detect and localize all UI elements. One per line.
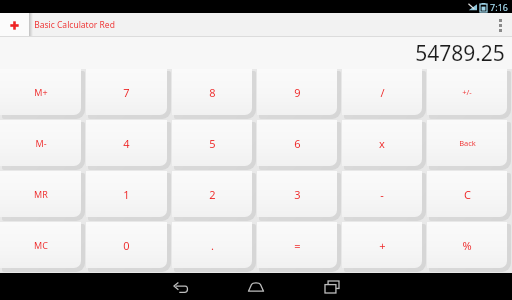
staticText: C [464, 187, 471, 202]
staticText: +/- [462, 87, 472, 97]
button[interactable]: 6 [257, 120, 341, 170]
staticText: % [462, 238, 472, 253]
staticText: 9 [294, 85, 301, 100]
staticText: 4 [123, 136, 130, 151]
button[interactable]: M- [0, 120, 85, 170]
button[interactable]: C [427, 171, 511, 221]
staticText: 0 [123, 238, 130, 253]
button[interactable]: / [342, 69, 426, 119]
staticText: M- [35, 137, 47, 149]
button[interactable]: 8 [172, 69, 256, 119]
button[interactable]: New [0, 13, 29, 37]
button[interactable]: 3 [257, 171, 341, 221]
staticText: x [379, 136, 385, 151]
button[interactable]: Recent apps [306, 273, 358, 300]
staticText: MR [34, 188, 48, 200]
button[interactable]: 1 [86, 171, 171, 221]
button[interactable]: Back [427, 120, 511, 170]
button[interactable]: M+ [0, 69, 85, 119]
staticText: / [380, 85, 385, 100]
staticText: 1 [123, 187, 130, 202]
staticText: = [294, 238, 301, 253]
button[interactable]: . [172, 222, 256, 272]
staticText: 3 [294, 187, 301, 202]
button[interactable]: Home [230, 273, 282, 300]
button[interactable]: Back [154, 273, 206, 300]
button[interactable]: % [427, 222, 511, 272]
staticText: 2 [209, 187, 216, 202]
button[interactable]: x [342, 120, 426, 170]
button[interactable]: 5 [172, 120, 256, 170]
staticText: - [380, 187, 384, 202]
staticText: 7 [123, 85, 130, 100]
staticText: 54789.25 [415, 39, 505, 68]
button[interactable]: 7 [86, 69, 171, 119]
staticText: . [211, 238, 214, 253]
button[interactable]: MC [0, 222, 85, 272]
button[interactable]: 9 [257, 69, 341, 119]
staticText: Back [459, 138, 476, 148]
button[interactable]: +/- [427, 69, 511, 119]
button[interactable]: 4 [86, 120, 171, 170]
staticText: 6 [294, 136, 301, 151]
button[interactable]: More options [488, 13, 512, 37]
staticText: 5 [209, 136, 216, 151]
button[interactable]: 0 [86, 222, 171, 272]
button[interactable]: - [342, 171, 426, 221]
staticText: + [379, 238, 386, 253]
staticText: 7:16 [490, 1, 508, 13]
button[interactable]: 2 [172, 171, 256, 221]
button[interactable]: = [257, 222, 341, 272]
staticText: MC [34, 239, 48, 251]
staticText: 8 [209, 85, 216, 100]
staticText: M+ [34, 86, 48, 98]
button[interactable]: + [342, 222, 426, 272]
button[interactable]: MR [0, 171, 85, 221]
staticText: Basic Calculator Red [34, 19, 115, 31]
